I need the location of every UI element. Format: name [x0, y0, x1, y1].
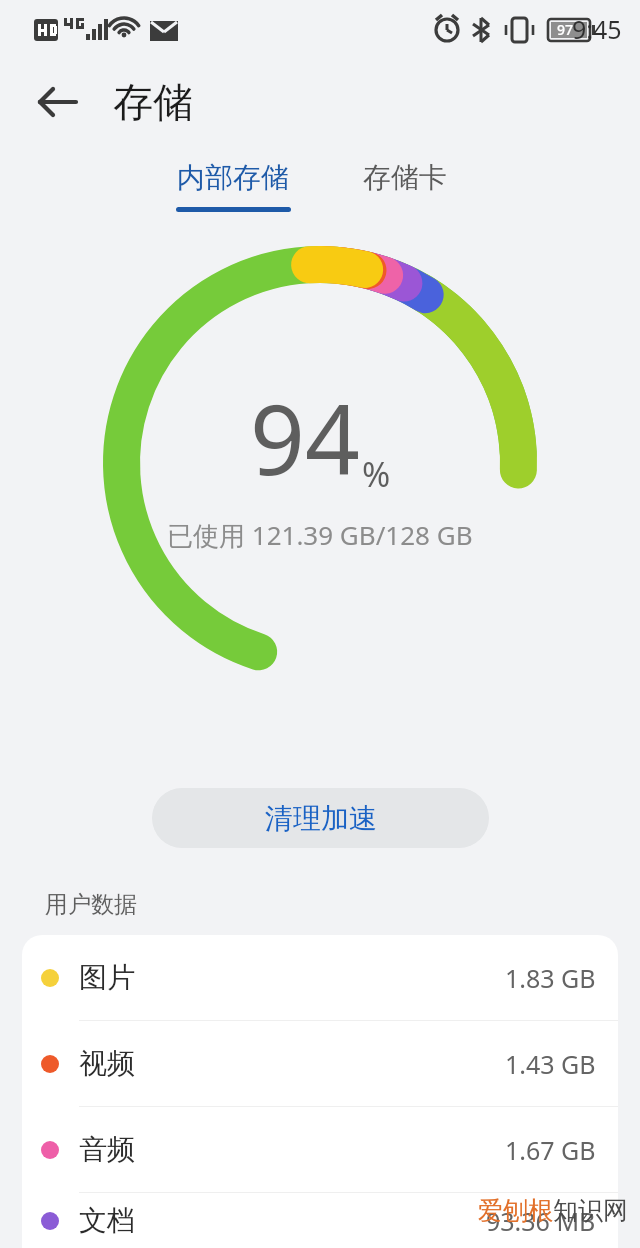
staticText: 内部存储: [177, 160, 289, 195]
button[interactable]: 视频: [22, 1021, 618, 1106]
staticText: 爱刨根: [478, 1195, 553, 1226]
staticText: 音频: [79, 1132, 135, 1167]
staticText: 97: [557, 20, 574, 39]
staticText: 知识网: [553, 1195, 628, 1226]
staticText: 图片: [79, 960, 135, 995]
staticText: 清理加速: [265, 801, 377, 836]
button[interactable]: 内部存储: [160, 146, 306, 212]
button[interactable]: 音频: [22, 1107, 618, 1192]
button[interactable]: 文档: [22, 1193, 618, 1248]
button[interactable]: Back: [30, 74, 86, 130]
staticText: 94: [250, 372, 360, 503]
staticText: 已使用 121.39 GB/128 GB: [167, 517, 473, 553]
staticText: 视频: [79, 1046, 135, 1081]
staticText: 93.36 MB: [486, 1204, 596, 1238]
staticText: 文档: [79, 1203, 135, 1238]
staticText: 1.83 GB: [505, 961, 596, 995]
staticText: 存储卡: [363, 160, 447, 195]
staticText: 存储: [113, 77, 193, 127]
button[interactable]: 图片: [22, 935, 618, 1020]
staticText: 1.43 GB: [505, 1047, 596, 1081]
staticText: 用户数据: [45, 890, 137, 919]
staticText: 9:45: [572, 12, 622, 46]
staticText: %: [362, 451, 391, 497]
button[interactable]: 存储卡: [330, 160, 480, 195]
button[interactable]: 清理加速: [152, 788, 489, 848]
staticText: 1.67 GB: [505, 1133, 596, 1167]
